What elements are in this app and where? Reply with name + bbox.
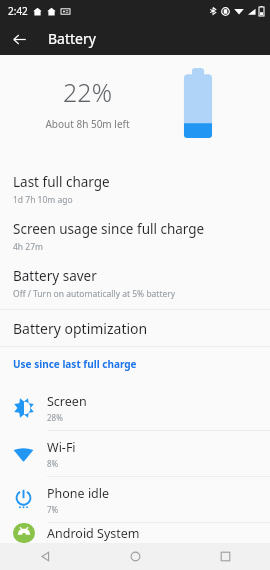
staticText: 2:42 xyxy=(8,4,28,18)
button[interactable]: Battery saver xyxy=(0,258,270,305)
staticText: Battery saver xyxy=(13,267,97,285)
staticText: 28% xyxy=(47,412,63,423)
staticText: Android System xyxy=(47,525,140,542)
staticText: 22% xyxy=(63,75,112,109)
button[interactable]: Wi-Fi xyxy=(0,431,270,476)
button[interactable]: Back xyxy=(6,26,32,52)
staticText: Screen xyxy=(47,393,87,410)
staticText: 7% xyxy=(47,504,59,515)
staticText: Battery optimization xyxy=(13,319,148,338)
button[interactable]: Android System xyxy=(0,523,270,543)
staticText: Screen usage since full charge xyxy=(13,220,205,238)
staticText: Last full charge xyxy=(13,173,110,191)
button[interactable]: Phone idle xyxy=(0,477,270,522)
staticText: About 8h 50m left xyxy=(45,117,130,131)
button[interactable]: Screen usage since full charge xyxy=(0,211,270,258)
staticText: Use since last full charge xyxy=(13,357,137,371)
staticText: 8% xyxy=(47,458,59,469)
staticText: Off / Turn on automatically at 5% batter… xyxy=(13,288,176,300)
staticText: Phone idle xyxy=(47,485,110,502)
staticText: Battery xyxy=(48,29,96,48)
button[interactable]: Back xyxy=(0,543,90,570)
staticText: 4h 27m xyxy=(13,241,43,253)
button[interactable]: Battery optimization xyxy=(0,310,270,346)
button[interactable]: Screen xyxy=(0,385,270,430)
button[interactable]: Last full charge xyxy=(0,164,270,211)
button[interactable]: Recents xyxy=(180,543,270,570)
staticText: 1d 7h 10m ago xyxy=(13,194,73,206)
staticText: Wi-Fi xyxy=(47,439,76,456)
button[interactable]: Home xyxy=(90,543,180,570)
